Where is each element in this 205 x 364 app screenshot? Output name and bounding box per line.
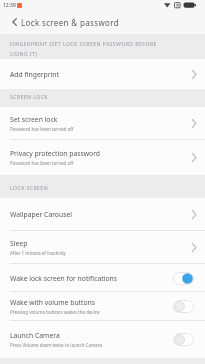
staticText: Password has been turned off (10, 160, 74, 166)
staticText: SCREEN LOCK (10, 93, 48, 100)
button[interactable]: Sleep (0, 231, 205, 264)
staticText: Wake lock screen for notifications (10, 274, 118, 283)
staticText: Lock screen & password (21, 17, 119, 28)
staticText: Wake with volume buttons (10, 298, 96, 307)
button[interactable]: Wake with volume buttons (0, 292, 205, 321)
staticText: Wallpaper Carousel (10, 210, 73, 219)
staticText: Privacy protection password (10, 149, 101, 158)
button[interactable]: Launch Camera (0, 321, 205, 358)
staticText: Sleep (10, 239, 28, 248)
staticText: Add fingerprint (10, 70, 59, 79)
staticText: Pressing volume buttons wakes the device (10, 309, 100, 315)
staticText: Set screen lock (10, 115, 58, 124)
button[interactable]: Privacy protection password (0, 140, 205, 175)
staticText: 12:39 (3, 2, 16, 9)
staticText: USING IT) (10, 50, 38, 57)
button[interactable]: Wake lock screen for notifications (0, 264, 205, 292)
staticText: Password has been turned off (10, 126, 74, 132)
staticText: Launch Camera (10, 331, 60, 340)
button[interactable]: Set screen lock (0, 107, 205, 140)
button[interactable] (8, 14, 20, 30)
staticText: After 1 minute of inactivity (10, 250, 66, 256)
staticText: FINGERPRINT (SET LOCK SCREEN PASSWORD BE… (10, 40, 157, 47)
button[interactable]: Wallpaper Carousel (0, 198, 205, 231)
staticText: Press Volume down twice to launch Camera (10, 342, 103, 348)
staticText: LOCK SCREEN (10, 184, 48, 191)
button[interactable]: Add fingerprint (0, 59, 205, 89)
